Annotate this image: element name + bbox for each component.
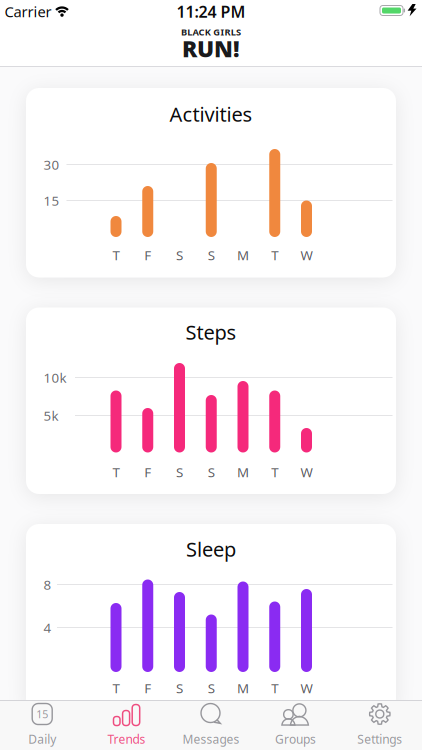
staticText: 8 <box>43 576 51 593</box>
staticText: S <box>208 246 215 264</box>
staticText: 10k <box>43 369 66 386</box>
staticText: T <box>271 463 278 481</box>
staticText: S <box>176 463 183 481</box>
staticText: 11:24 PM <box>176 1 245 22</box>
staticText: M <box>237 463 249 481</box>
staticText: Settings <box>357 731 402 747</box>
button[interactable]: Messages <box>169 700 253 749</box>
staticText: Carrier <box>4 2 51 21</box>
staticText: T <box>112 246 119 264</box>
staticText: F <box>144 463 151 481</box>
staticText: Trends <box>108 731 146 747</box>
staticText: Sleep <box>186 536 236 562</box>
staticText: W <box>300 463 312 481</box>
staticText: F <box>144 246 151 264</box>
staticText: W <box>300 246 312 264</box>
staticText: BLACK GIRLS <box>181 26 241 38</box>
staticText: M <box>237 246 249 264</box>
staticText: T <box>112 679 119 697</box>
staticText: S <box>176 679 183 697</box>
button[interactable]: Trends <box>84 700 169 749</box>
staticText: 15 <box>36 707 48 721</box>
staticText: RUN! <box>182 33 240 63</box>
staticText: T <box>112 463 119 481</box>
staticText: S <box>208 679 215 697</box>
button[interactable]: Groups <box>253 700 338 749</box>
staticText: F <box>144 679 151 697</box>
button[interactable]: 15 <box>0 700 84 749</box>
staticText: Steps <box>185 319 236 345</box>
staticText: T <box>271 246 278 264</box>
button[interactable]: Settings <box>338 700 422 749</box>
staticText: Messages <box>182 731 239 747</box>
staticText: T <box>271 679 278 697</box>
staticText: 5k <box>43 407 58 424</box>
staticText: 15 <box>43 192 59 209</box>
staticText: 30 <box>43 156 59 173</box>
staticText: Groups <box>275 731 316 747</box>
staticText: Daily <box>28 731 56 747</box>
staticText: S <box>208 463 215 481</box>
staticText: 4 <box>43 619 51 636</box>
staticText: W <box>300 679 312 697</box>
staticText: Activities <box>169 101 252 127</box>
staticText: M <box>237 679 249 697</box>
staticText: S <box>176 246 183 264</box>
